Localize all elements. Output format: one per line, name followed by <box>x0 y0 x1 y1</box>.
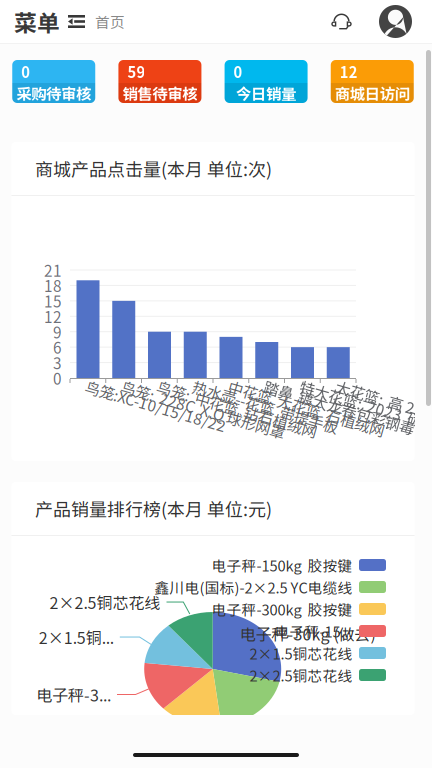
staticText: 鑫川电(国标)-2×2.5 YC电缆线 <box>154 576 352 598</box>
staticText: 采购待审核 <box>16 82 91 104</box>
staticText: 今日销量 <box>236 82 296 104</box>
button[interactable]: 电子秤-150kg 胶按键 <box>11 554 386 576</box>
staticText: 21 <box>44 259 62 281</box>
button[interactable]: 2×2.5铜芯花线 <box>11 664 386 686</box>
button[interactable]: 客服 <box>324 5 359 37</box>
staticText: 6 <box>53 336 62 358</box>
staticText: 15 <box>44 290 62 312</box>
button[interactable]: 首页 <box>85 0 125 44</box>
staticText: 12 <box>340 61 358 82</box>
staticText: 12 <box>44 305 62 327</box>
staticText: 9 <box>53 321 62 343</box>
staticText: 销售待审核 <box>122 82 197 104</box>
staticText: 3 <box>53 351 62 374</box>
button[interactable]: 菜单 <box>0 0 85 48</box>
button[interactable]: 个人中心 <box>359 5 412 38</box>
staticText: 中花篮 大花篮 石植绒网 <box>230 375 392 397</box>
staticText: 2×1.5铜... <box>39 625 114 649</box>
staticText: 电子秤-15... <box>274 620 352 642</box>
staticText: 大花篮: 高 250 <box>338 375 432 397</box>
button[interactable]: 电子秤-300kg 胶按键 <box>11 598 386 620</box>
staticText: 鸟笼: 中花篮 钻石植绒网 <box>159 375 325 397</box>
staticText: 59 <box>127 61 145 82</box>
button[interactable]: 0 <box>225 60 308 103</box>
button[interactable]: 2×1.5铜芯花线 <box>11 642 386 664</box>
staticText: 踏鼻 镀大龙卷包彩钢毒 <box>266 375 422 397</box>
staticText: 菜单 <box>14 5 60 38</box>
staticText: 鸟笼: 228C X.Q 球形网罩 <box>123 375 293 397</box>
staticText: 鸟笼:XC-10/15/18/22 <box>87 375 233 397</box>
staticText: 0 <box>234 61 243 82</box>
staticText: 电子秤-300kg 胶按键 <box>211 598 352 620</box>
staticText: 0 <box>53 367 62 389</box>
staticText: 电子秤-150kg 胶按键 <box>211 554 352 576</box>
staticText: 产品销量排行榜(本月 单位:元) <box>35 495 272 522</box>
staticText: 商城产品点击量(本月 单位:次) <box>35 155 272 182</box>
staticText: 18 <box>44 274 62 296</box>
staticText: 2×1.5铜芯花线 <box>249 642 352 664</box>
staticText: 0 <box>21 61 30 82</box>
staticText: 电子秤-30kg (做去) <box>239 622 375 645</box>
staticText: 电子秤-3... <box>36 683 111 706</box>
button[interactable]: 电子秤-15... <box>11 620 386 642</box>
button[interactable]: 59 <box>118 60 201 103</box>
staticText: 首页 <box>95 11 125 32</box>
staticText: 2×2.5铜芯花线 <box>249 664 352 686</box>
button[interactable]: 鑫川电(国标)-2×2.5 YC电缆线 <box>11 576 386 598</box>
button[interactable]: 12 <box>331 60 414 103</box>
staticText: 2×2.5铜芯花线 <box>49 590 160 614</box>
staticText: 商城日访问 <box>335 82 410 104</box>
button[interactable]: 0 <box>12 60 95 103</box>
staticText: 特大花篮: 2023 碳纤 <box>302 375 432 397</box>
staticText: 热水壶--花篮 带提手板 <box>195 375 346 397</box>
